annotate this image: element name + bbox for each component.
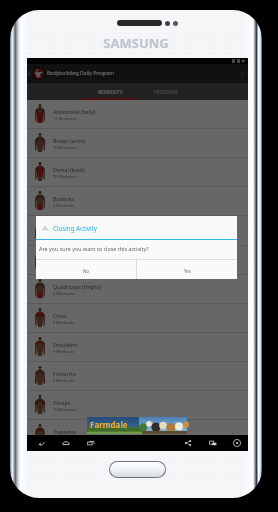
staticText: Biceps (arms) — [53, 137, 86, 144]
button[interactable]: Screen capture — [207, 435, 219, 451]
staticText: WORKOUTS — [98, 89, 123, 95]
staticText: Quadriceps (thighs) — [53, 283, 101, 290]
button[interactable]: Hamstrings — [27, 246, 248, 275]
staticText: Shoulders — [53, 341, 78, 348]
staticText: Hamstrings — [53, 254, 82, 261]
staticText: Yes — [184, 268, 191, 274]
button[interactable]: Calves — [27, 217, 248, 246]
button[interactable]: PROGRAMS — [138, 83, 194, 100]
button[interactable]: Biceps (arms) — [27, 129, 248, 158]
button[interactable]: Triceps — [27, 391, 248, 420]
staticText: PROGRAMS — [154, 89, 178, 95]
staticText: Bodybuilding Daily Program — [47, 70, 115, 77]
staticText: Closing Activity — [53, 224, 97, 232]
button[interactable]: Share — [182, 435, 194, 451]
staticText: Calves — [53, 225, 69, 232]
staticText: Buttocks — [53, 195, 75, 202]
staticText: 10 Workouts — [53, 407, 77, 412]
button[interactable]: Quadriceps (thighs) — [27, 275, 248, 304]
staticText: SAMSUNG — [10, 34, 262, 52]
button[interactable]: Forearms — [27, 362, 248, 391]
button[interactable]: Recent apps — [85, 435, 97, 451]
staticText: Are you sure you want to close this acti… — [39, 245, 149, 252]
staticText: Chest — [53, 312, 67, 319]
button[interactable]: Dorsal (back) — [27, 158, 248, 187]
staticText: 10 Workouts — [53, 145, 77, 150]
button[interactable]: Abdominal (belly) — [27, 100, 248, 129]
button[interactable]: Advertisement — [87, 417, 187, 434]
button[interactable]: Trapezius — [27, 420, 248, 449]
button[interactable]: Shoulders — [27, 333, 248, 362]
staticText: Trapezius — [53, 428, 77, 435]
button[interactable]: Close — [231, 435, 243, 451]
staticText: Dorsal (back) — [53, 166, 85, 173]
button[interactable]: No — [36, 260, 136, 279]
staticText: 8 Workouts — [53, 291, 75, 296]
staticText: 6 Workouts — [53, 378, 75, 383]
staticText: Forearms — [53, 370, 77, 377]
button[interactable]: Yes — [137, 260, 237, 279]
button[interactable]: Navigate up — [27, 64, 32, 83]
staticText: No — [83, 268, 89, 274]
staticText: 9 Workouts — [53, 203, 75, 208]
staticText: Farmdale — [90, 419, 128, 430]
staticText: 9 Workouts — [53, 349, 75, 354]
button[interactable]: More options — [237, 64, 248, 83]
staticText: 11 Workouts — [53, 116, 77, 121]
staticText: Triceps — [53, 399, 71, 406]
button[interactable]: Home — [60, 435, 72, 451]
staticText: 9 Workouts — [53, 320, 75, 325]
staticText: Abdominal (belly) — [53, 108, 96, 115]
button[interactable]: Chest — [27, 304, 248, 333]
button[interactable]: Buttocks — [27, 187, 248, 216]
button[interactable]: WORKOUTS — [82, 83, 138, 100]
button[interactable]: Back — [35, 435, 47, 451]
staticText: 10 Workouts — [53, 174, 77, 179]
